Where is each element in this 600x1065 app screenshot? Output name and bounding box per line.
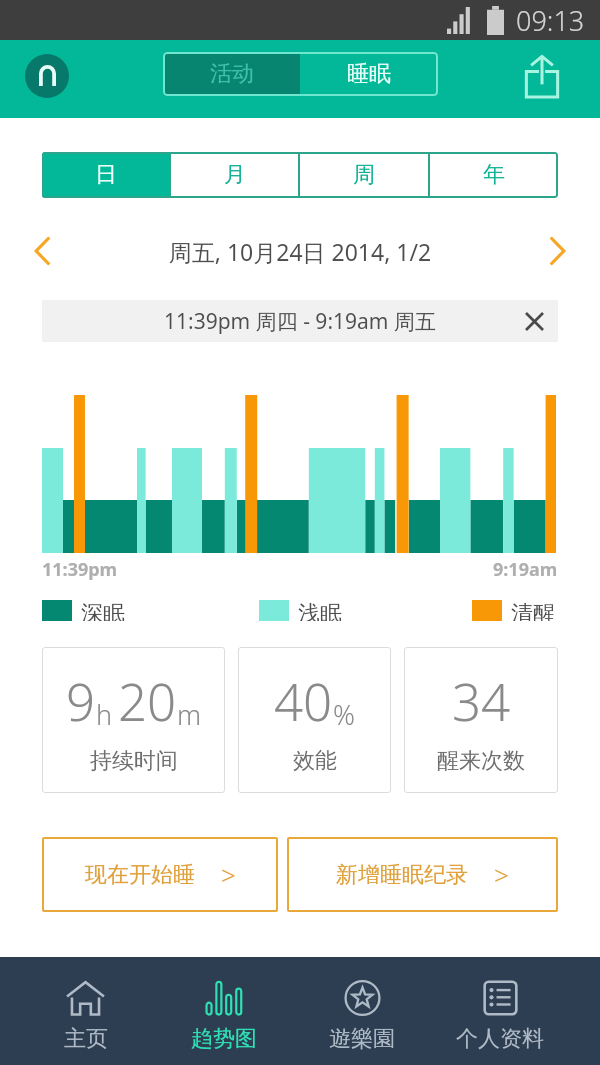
staticText: 周五, 10月24日 2014, 1/2 <box>64 236 536 267</box>
staticText: % <box>333 696 355 733</box>
staticText: h <box>96 696 113 733</box>
button[interactable]: Next day <box>536 230 578 272</box>
staticText: 遊樂園 <box>329 1025 395 1053</box>
staticText: 月 <box>224 161 246 189</box>
button[interactable]: 新增睡眠纪录 <box>287 837 558 912</box>
staticText: 新增睡眠纪录 <box>336 861 468 889</box>
staticText: m <box>177 696 202 733</box>
button[interactable]: 9 <box>42 647 225 793</box>
button[interactable]: Previous day <box>22 230 64 272</box>
button[interactable]: Clear range <box>518 305 550 337</box>
staticText: 清醒 <box>511 600 555 621</box>
staticText: 现在开始睡 <box>85 861 195 889</box>
button[interactable]: App logo <box>25 54 69 98</box>
staticText: 趋势图 <box>191 1025 257 1053</box>
staticText: 20 <box>118 666 177 735</box>
staticText: 活动 <box>210 60 254 88</box>
staticText: 主页 <box>64 1025 108 1053</box>
staticText: 9 <box>66 666 96 735</box>
button[interactable]: 主页 <box>16 957 155 1065</box>
other: Battery <box>487 6 504 35</box>
staticText: 40 <box>274 666 333 735</box>
button[interactable]: 现在开始睡 <box>42 837 278 912</box>
staticText: 睡眠 <box>347 60 391 88</box>
button[interactable]: 遊樂園 <box>293 957 431 1065</box>
button[interactable]: 34 <box>404 647 558 793</box>
button[interactable]: 睡眠 <box>300 52 438 96</box>
button[interactable]: 年 <box>430 152 558 198</box>
staticText: > <box>494 857 509 892</box>
staticText: 周 <box>353 161 375 189</box>
staticText: 9:19am <box>493 557 558 582</box>
button[interactable]: 月 <box>171 152 298 198</box>
staticText: 年 <box>483 161 505 189</box>
other: Signal strength <box>447 7 472 34</box>
button[interactable]: 周 <box>300 152 428 198</box>
button[interactable]: 11:39pm 周四 - 9:19am 周五 <box>42 300 558 342</box>
staticText: > <box>221 857 236 892</box>
staticText: 日 <box>95 161 117 189</box>
staticText: 11:39pm <box>42 557 118 582</box>
button[interactable]: Share <box>514 48 570 104</box>
staticText: 持续时间 <box>90 747 178 775</box>
staticText: 醒来次数 <box>437 747 525 775</box>
staticText: 深眠 <box>81 600 125 621</box>
staticText: 11:39pm 周四 - 9:19am 周五 <box>164 307 436 336</box>
staticText: 个人资料 <box>456 1025 544 1053</box>
staticText: 浅眠 <box>298 600 342 621</box>
staticText: 34 <box>452 666 511 735</box>
button[interactable]: 日 <box>42 152 169 198</box>
button[interactable]: 个人资料 <box>431 957 569 1065</box>
button[interactable]: 活动 <box>163 52 300 96</box>
staticText: 效能 <box>293 747 337 775</box>
button[interactable]: 40 <box>238 647 391 793</box>
button[interactable]: 趋势图 <box>155 957 293 1065</box>
staticText: 09:13 <box>516 2 585 39</box>
